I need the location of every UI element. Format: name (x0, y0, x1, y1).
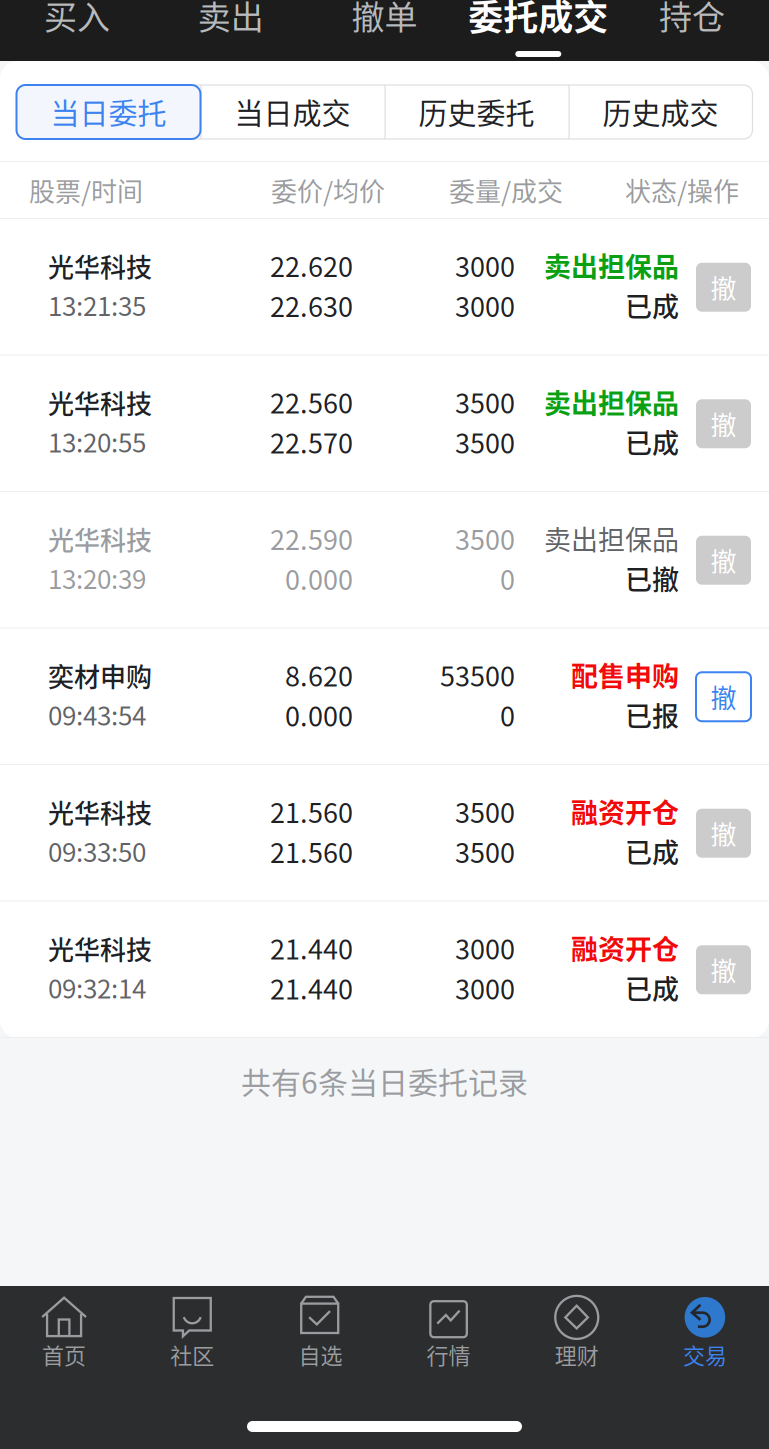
staticText: 持仓 (659, 0, 725, 39)
button[interactable]: 撤 (696, 536, 751, 585)
staticText: 3500 (455, 792, 515, 831)
button[interactable]: 行情 (384, 1292, 513, 1373)
staticText: 3000 (455, 246, 515, 285)
button[interactable]: 持仓 (615, 0, 769, 61)
staticText: 已成 (625, 422, 679, 461)
button[interactable]: 委托成交 (461, 0, 615, 61)
staticText: 3000 (455, 928, 515, 967)
button[interactable]: 交易 (641, 1292, 769, 1373)
staticText: 卖出担保品 (544, 519, 679, 558)
staticText: 委托成交 (468, 0, 608, 40)
staticText: 光华科技 (48, 930, 152, 967)
staticText: 22.590 (270, 519, 353, 558)
staticText: 自选 (298, 1339, 342, 1370)
staticText: 光华科技 (48, 247, 152, 285)
staticText: 社区 (170, 1339, 214, 1370)
staticText: 21.560 (270, 832, 353, 871)
button[interactable]: 买入 (0, 0, 154, 61)
button[interactable]: 理财 (513, 1292, 641, 1373)
staticText: 22.570 (270, 422, 353, 461)
staticText: 8.620 (285, 655, 353, 694)
staticText: 3000 (455, 286, 515, 325)
staticText: 0.000 (285, 695, 353, 734)
button[interactable]: 历史成交 (568, 85, 752, 139)
staticText: 3500 (455, 519, 515, 558)
button[interactable]: 撤 (696, 809, 751, 858)
staticText: 已成 (625, 832, 679, 871)
staticText: 撤 (710, 268, 736, 306)
staticText: 3500 (455, 422, 515, 461)
staticText: 配售申购 (571, 655, 679, 694)
staticText: 已撤 (625, 559, 679, 598)
staticText: 已成 (625, 968, 679, 1007)
button[interactable]: 当日委托 (16, 85, 200, 139)
button[interactable]: 撤 (696, 263, 751, 312)
staticText: 当日委托 (50, 91, 166, 133)
staticText: 已报 (625, 695, 679, 734)
staticText: 共有6条当日委托记录 (241, 1059, 528, 1102)
staticText: 卖出担保品 (544, 246, 679, 285)
staticText: 状态/操作 (625, 171, 739, 209)
staticText: 光华科技 (48, 520, 152, 558)
staticText: 已成 (625, 286, 679, 325)
staticText: 交易 (683, 1339, 727, 1370)
staticText: 光华科技 (48, 793, 152, 831)
button[interactable]: 首页 (0, 1292, 128, 1373)
staticText: 当日成交 (234, 91, 350, 133)
staticText: 0.000 (285, 559, 353, 598)
staticText: 09:33:50 (48, 832, 146, 869)
staticText: 53500 (440, 655, 515, 694)
button[interactable]: 历史委托 (384, 85, 568, 139)
staticText: 0 (500, 695, 515, 734)
staticText: 13:20:55 (48, 422, 146, 460)
staticText: 首页 (42, 1339, 86, 1370)
button[interactable]: 社区 (128, 1292, 256, 1373)
staticText: 22.630 (270, 286, 353, 325)
staticText: 撤 (710, 814, 736, 852)
button[interactable]: 撤 (696, 945, 751, 994)
button[interactable]: 当日成交 (200, 85, 384, 139)
staticText: 历史成交 (602, 91, 718, 133)
staticText: 卖出担保品 (544, 382, 679, 421)
staticText: 融资开仓 (571, 792, 679, 831)
staticText: 3500 (455, 382, 515, 421)
staticText: 融资开仓 (571, 928, 679, 967)
staticText: 13:21:35 (48, 286, 146, 323)
staticText: 21.440 (270, 968, 353, 1007)
staticText: 0 (500, 559, 515, 598)
staticText: 撤 (710, 405, 736, 442)
staticText: 21.440 (270, 928, 353, 967)
staticText: 3000 (455, 968, 515, 1007)
staticText: 历史委托 (418, 91, 534, 133)
staticText: 09:43:54 (48, 695, 146, 733)
button[interactable]: 卖出 (154, 0, 308, 61)
staticText: 21.560 (270, 792, 353, 831)
staticText: 光华科技 (48, 384, 152, 421)
staticText: 09:32:14 (48, 968, 146, 1006)
staticText: 买入 (44, 0, 110, 39)
staticText: 股票/时间 (29, 171, 143, 209)
staticText: 22.620 (270, 246, 353, 285)
button[interactable]: 撤 (696, 672, 751, 721)
staticText: 撤 (710, 951, 736, 988)
staticText: 撤单 (351, 0, 417, 39)
staticText: 委价/均价 (271, 171, 385, 209)
staticText: 13:20:39 (48, 559, 146, 596)
staticText: 行情 (427, 1339, 471, 1370)
staticText: 3500 (455, 832, 515, 871)
button[interactable]: 撤单 (308, 0, 461, 61)
button[interactable]: 自选 (256, 1292, 384, 1373)
staticText: 奕材申购 (48, 657, 152, 694)
staticText: 22.560 (270, 382, 353, 421)
staticText: 撤 (710, 541, 736, 579)
staticText: 卖出 (198, 0, 264, 39)
staticText: 委量/成交 (449, 171, 563, 209)
staticText: 理财 (555, 1339, 599, 1370)
button[interactable]: 撤 (696, 399, 751, 448)
staticText: 撤 (710, 678, 736, 715)
